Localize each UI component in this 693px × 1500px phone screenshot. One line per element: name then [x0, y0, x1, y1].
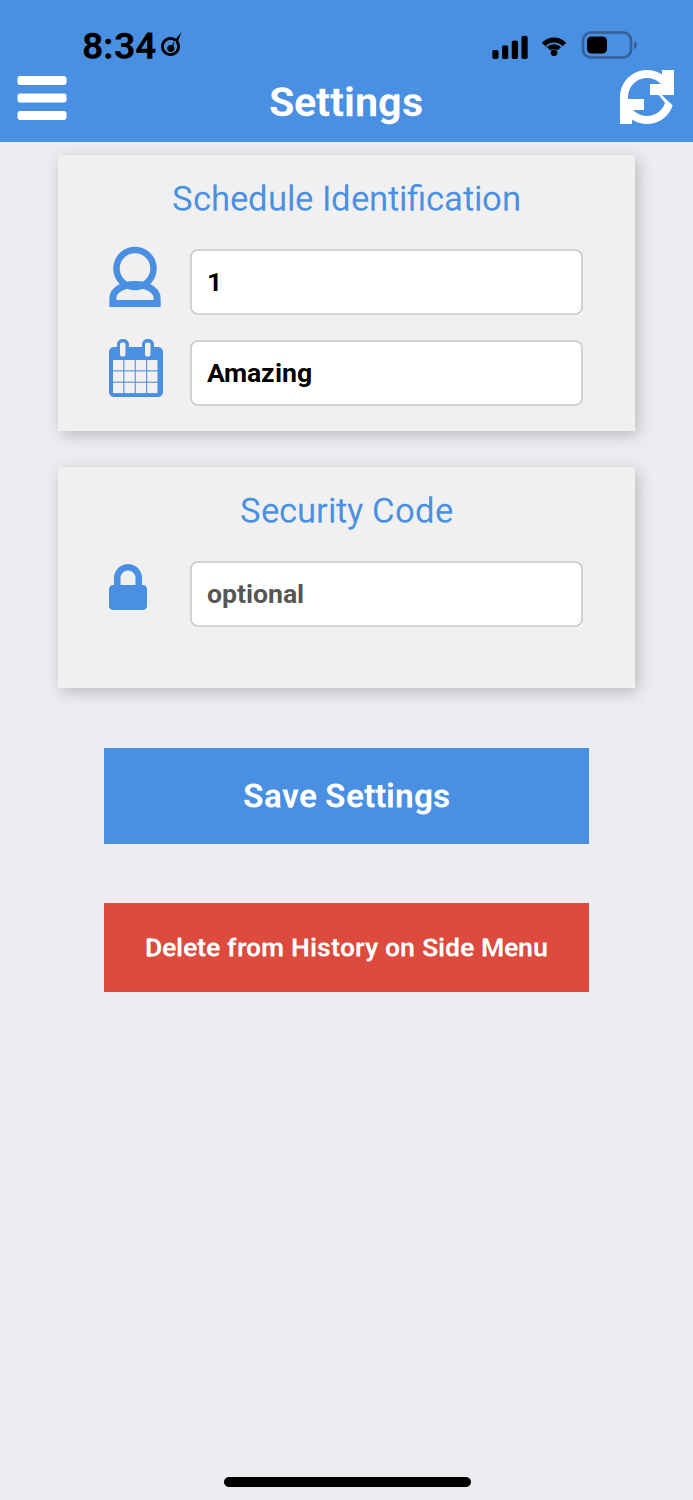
staticText: Amazing: [207, 357, 312, 389]
button[interactable]: Delete from History on Side Menu: [104, 903, 589, 992]
staticText: 8:34: [82, 24, 156, 68]
button[interactable]: Refresh: [605, 59, 689, 135]
button[interactable]: Save Settings: [104, 748, 589, 844]
staticText: 1: [207, 266, 222, 298]
staticText: Delete from History on Side Menu: [145, 932, 548, 963]
staticText: Security Code: [240, 491, 453, 531]
staticText: Save Settings: [243, 776, 450, 816]
button[interactable]: Menu: [0, 60, 85, 136]
staticText: Settings: [269, 78, 423, 126]
staticText: optional: [207, 578, 304, 610]
staticText: Schedule Identification: [172, 179, 521, 219]
